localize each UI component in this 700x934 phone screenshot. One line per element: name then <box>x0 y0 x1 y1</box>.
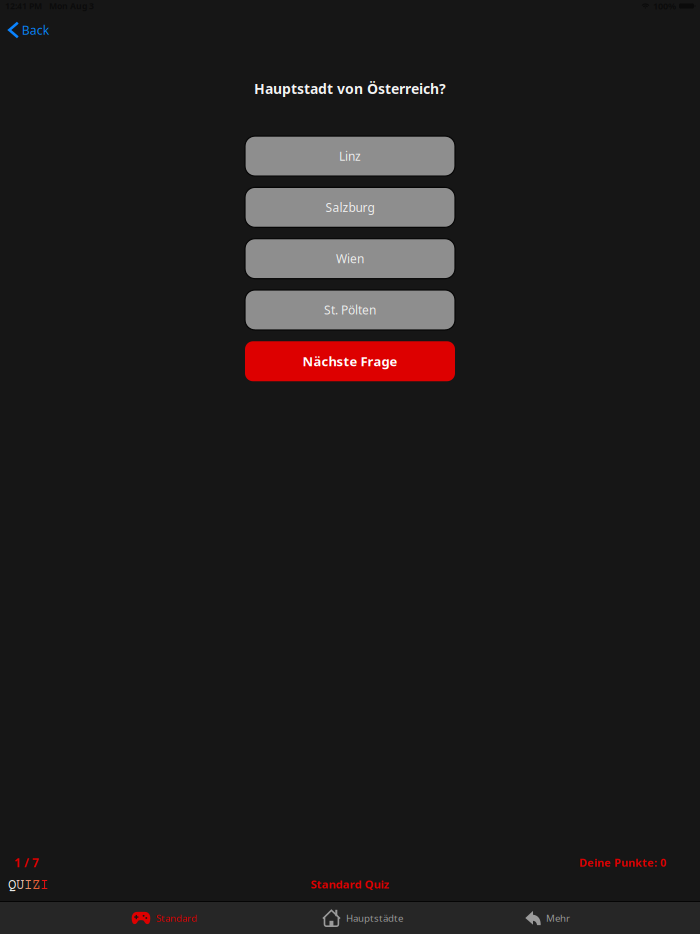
staticText: Hauptstadt von Österreich? <box>254 79 446 98</box>
button[interactable]: St. Pölten <box>245 290 455 330</box>
staticText: Mehr <box>546 911 570 925</box>
staticText: I <box>40 878 48 894</box>
staticText: Deine Punkte: 0 <box>579 855 666 870</box>
staticText: Mon Aug 3 <box>49 0 94 12</box>
button[interactable]: Hauptstädte <box>260 901 460 934</box>
staticText: 1 / 7 <box>14 854 39 871</box>
staticText: 100% <box>653 0 676 12</box>
staticText: U <box>16 878 24 894</box>
staticText: Back <box>22 22 50 38</box>
staticText: I <box>24 878 32 894</box>
button[interactable]: Wien <box>245 239 455 279</box>
button[interactable]: Standard <box>68 901 260 934</box>
button[interactable]: Linz <box>245 136 455 176</box>
button[interactable]: Back <box>0 13 50 42</box>
staticText: St. Pölten <box>324 302 376 318</box>
staticText: Nächste Frage <box>302 352 397 370</box>
staticText: 12:41 PM <box>5 0 42 12</box>
staticText: Z <box>32 878 40 894</box>
staticText: Wien <box>336 250 364 267</box>
staticText: Salzburg <box>325 199 374 215</box>
staticText: Standard <box>156 911 197 925</box>
staticText: Linz <box>339 148 361 164</box>
staticText: Standard Quiz <box>310 876 389 892</box>
button[interactable]: Nächste Frage <box>245 341 455 381</box>
button[interactable]: Mehr <box>460 901 635 934</box>
staticText: Q <box>8 878 16 894</box>
staticText: Hauptstädte <box>346 911 403 925</box>
button[interactable]: Salzburg <box>245 187 455 227</box>
